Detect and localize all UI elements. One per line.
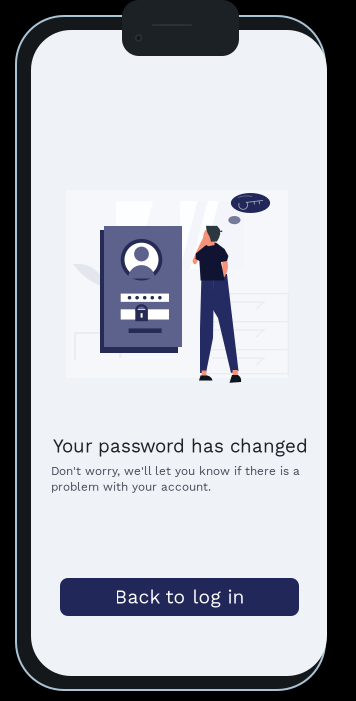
staticText: Back to log in: [114, 586, 244, 608]
button[interactable]: Back to log in: [60, 578, 299, 616]
staticText: problem with your account.: [51, 480, 211, 494]
staticText: Don't worry, we'll let you know if there…: [51, 464, 300, 478]
staticText: Your password has changed: [53, 435, 308, 457]
